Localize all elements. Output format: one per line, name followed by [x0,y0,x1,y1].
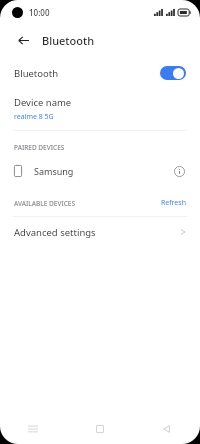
button[interactable]: Device name [0,90,200,130]
button[interactable]: Samsung [0,158,200,184]
staticText: Device name [14,96,72,109]
staticText: Refresh [160,198,186,208]
button[interactable]: Back [133,414,200,444]
button[interactable]: Home [66,414,133,444]
staticText: Samsung [34,165,74,177]
staticText: Bluetooth [14,67,59,80]
staticText: AVAILABLE DEVICES [14,199,76,208]
staticText: realme 8 5G [14,112,54,122]
button[interactable]: Recent apps [0,414,66,444]
staticText: Advanced settings [14,226,96,239]
button[interactable]: Device details [170,162,188,180]
staticText: PAIRED DEVICES [14,143,65,152]
staticText: Bluetooth [42,33,95,48]
staticText: 10:00 [29,7,50,18]
button[interactable]: Bluetooth [0,56,200,90]
button[interactable]: Refresh [160,198,186,208]
button[interactable]: Advanced settings [0,217,200,247]
button[interactable]: Back [12,29,34,51]
button[interactable]: Bluetooth toggle [160,66,186,80]
